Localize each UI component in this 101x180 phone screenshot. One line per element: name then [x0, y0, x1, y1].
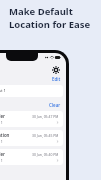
staticText: Make Default [9, 5, 73, 18]
staticText: Clear [49, 102, 61, 108]
staticText: Tasks List 1 [0, 158, 3, 163]
button[interactable]: Settings [50, 64, 61, 75]
staticText: Tasks List 1 [0, 120, 3, 125]
staticText: Edit [52, 76, 61, 82]
staticText: 30 Jun, 05:45 PM [32, 133, 59, 138]
staticText: 30 Jun, 05:47 PM [32, 114, 59, 119]
button[interactable]: Reminder [0, 149, 63, 165]
staticText: Reminder [0, 151, 5, 157]
staticText: Location for Ease [9, 18, 91, 31]
staticText: Notification [0, 132, 10, 138]
button[interactable]: Notification [0, 130, 63, 146]
staticText: Tasks List 1 [0, 139, 3, 144]
staticText: Reminder [0, 113, 5, 119]
button[interactable]: Edit [52, 76, 61, 82]
button[interactable]: Clear [49, 102, 61, 108]
button[interactable]: Reminder [0, 111, 63, 127]
staticText: Tasks List 1 [0, 88, 6, 94]
staticText: 30 Jun, 05:40 PM [32, 152, 59, 157]
button[interactable]: Tasks List 1 [0, 85, 63, 97]
